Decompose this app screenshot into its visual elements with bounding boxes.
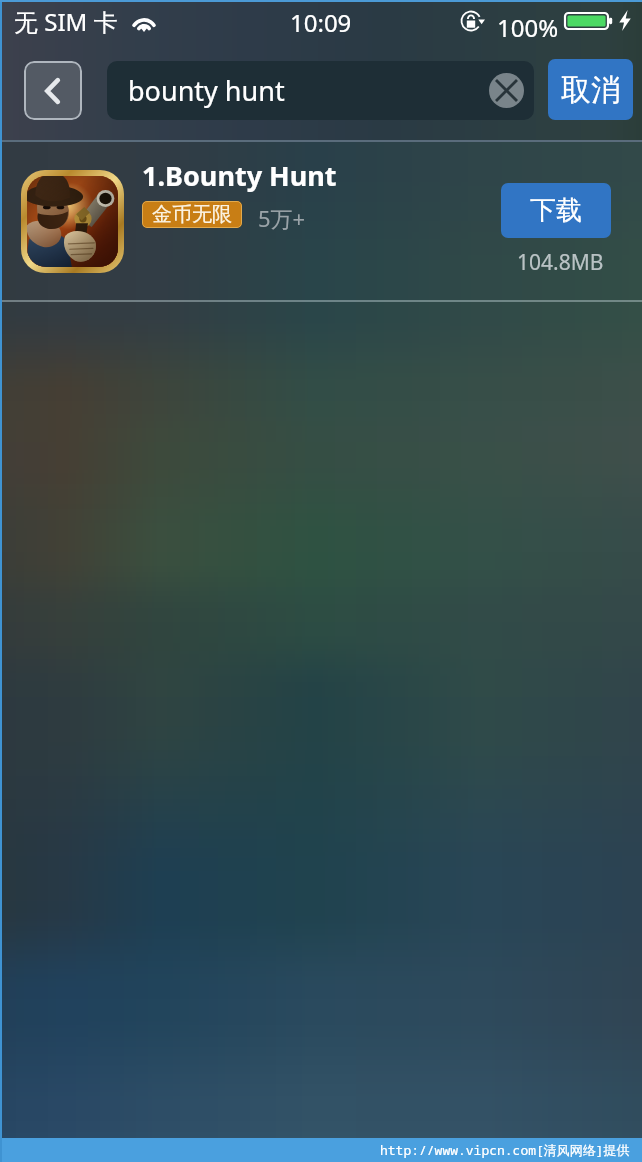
staticText: 无 SIM 卡 (14, 5, 118, 38)
staticText: 金币无限 (152, 202, 232, 227)
staticText: 10:09 (290, 6, 352, 39)
staticText: http://www.vipcn.com[清风网络]提供 (380, 1141, 630, 1159)
staticText: 104.8MB (517, 248, 604, 277)
staticText: 1.Bounty Hunt (142, 157, 337, 194)
staticText: bounty hunt (128, 72, 285, 109)
button[interactable]: 1.Bounty Hunt (0, 142, 642, 300)
button[interactable]: 下载 (501, 183, 611, 238)
staticText: 5万+ (258, 203, 306, 233)
button[interactable]: Back (24, 61, 82, 120)
button[interactable]: 取消 (548, 59, 633, 120)
staticText: 取消 (561, 71, 621, 109)
button[interactable]: Clear (489, 73, 524, 108)
staticText: 100% (497, 11, 559, 44)
staticText: 下载 (530, 194, 582, 227)
button[interactable]: bounty hunt (107, 61, 534, 120)
